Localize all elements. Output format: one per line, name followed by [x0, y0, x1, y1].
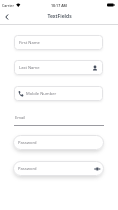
- staticText: Mobile Number: [26, 91, 57, 97]
- button[interactable]: Last Name: [14, 60, 103, 75]
- staticText: Carrier: [2, 3, 14, 8]
- staticText: 10:17 AM: [51, 3, 67, 8]
- staticText: Last Name: [19, 65, 40, 71]
- staticText: TextFields: [47, 13, 72, 20]
- button[interactable]: [3, 12, 11, 22]
- staticText: Password: [18, 140, 37, 146]
- button[interactable]: Email: [14, 112, 104, 126]
- button[interactable]: Password: [13, 161, 104, 176]
- staticText: Email: [15, 115, 26, 120]
- staticText: First Name: [19, 40, 40, 46]
- button[interactable]: Password: [13, 135, 104, 150]
- button[interactable]: Mobile Number: [14, 86, 103, 101]
- staticText: Password: [18, 166, 37, 172]
- button[interactable]: First Name: [14, 35, 103, 50]
